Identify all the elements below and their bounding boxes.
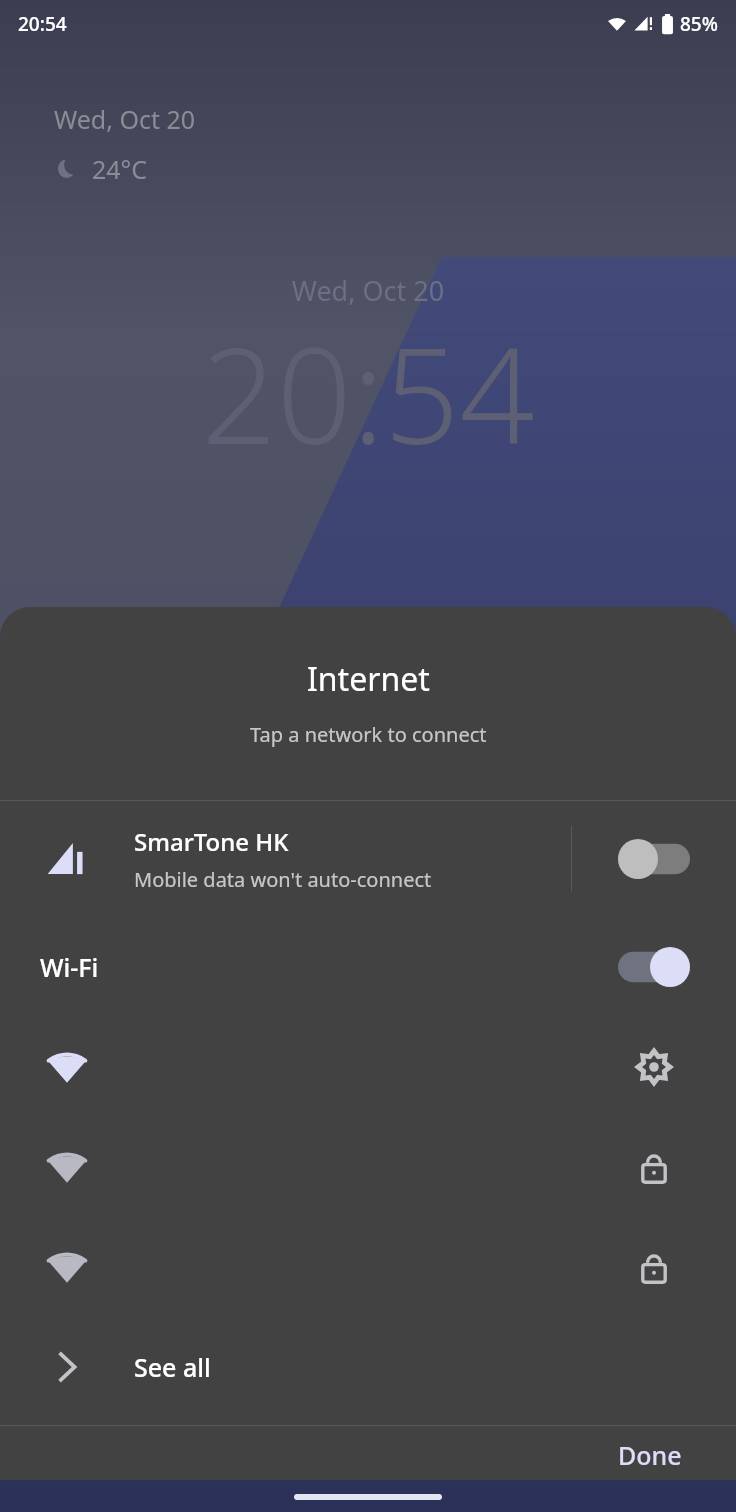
button[interactable]: Done (604, 1426, 696, 1480)
staticText: Mobile data won't auto-connect (134, 866, 432, 893)
staticText: 24°C (92, 152, 148, 186)
staticText: Wed, Oct 20 (0, 272, 736, 309)
staticText: See all (134, 1350, 211, 1384)
button[interactable]: See all (0, 1317, 736, 1417)
staticText: Done (618, 1438, 682, 1468)
staticText: Wi-Fi (40, 950, 99, 984)
staticText: 20:54 (0, 303, 736, 483)
button[interactable]: Network settings (572, 1017, 736, 1117)
staticText: Tap a network to connect (250, 721, 487, 748)
button[interactable]: Wi-Fi toggle (572, 917, 736, 1017)
button[interactable]: Mobile data toggle (572, 801, 736, 917)
button[interactable]: Secured network (572, 1117, 736, 1217)
staticText: SmarTone HK (134, 825, 289, 858)
button[interactable]: Network settings (0, 1017, 736, 1117)
staticText: 85% (680, 11, 718, 37)
staticText: Wed, Oct 20 (54, 102, 196, 136)
button[interactable]: SmarTone HK (0, 801, 736, 917)
button[interactable]: Secured network (572, 1217, 736, 1317)
button[interactable]: Secured network (0, 1217, 736, 1317)
button[interactable]: Wi-Fi (0, 917, 736, 1017)
button[interactable]: Secured network (0, 1117, 736, 1217)
staticText: Internet (307, 657, 430, 701)
staticText: 20:54 (18, 11, 67, 37)
